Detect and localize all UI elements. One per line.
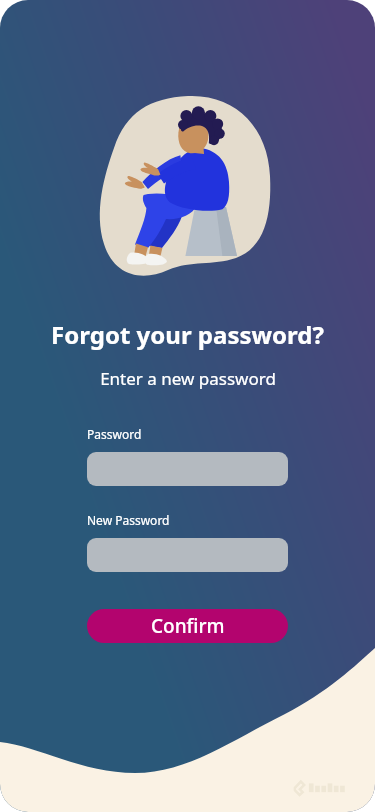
staticText: New Password (87, 512, 170, 528)
staticText: Enter a new password (100, 367, 276, 390)
button[interactable]: Password (87, 452, 288, 486)
staticText: Confirm (151, 613, 225, 639)
staticText: Forgot your password? (51, 318, 324, 351)
button[interactable]: Confirm (87, 609, 288, 643)
button[interactable]: New Password (87, 538, 288, 572)
staticText: Password (87, 426, 142, 442)
